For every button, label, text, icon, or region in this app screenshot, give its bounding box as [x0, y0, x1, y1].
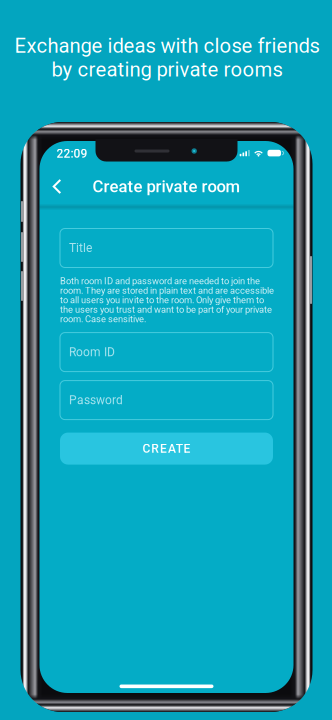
staticText: Both room ID and password are needed to …	[60, 275, 274, 325]
staticText: Exchange ideas with close friends	[14, 34, 319, 58]
staticText: Room ID	[69, 345, 115, 359]
staticText: 22:09	[56, 146, 87, 161]
staticText: Password	[69, 393, 123, 407]
staticText: Title	[69, 241, 92, 255]
staticText: by creating private rooms	[51, 58, 282, 82]
button[interactable]: CREATE	[60, 433, 273, 465]
staticText: CREATE	[142, 442, 191, 456]
staticText: Create private room	[92, 177, 240, 196]
button[interactable]: Back	[44, 172, 70, 200]
